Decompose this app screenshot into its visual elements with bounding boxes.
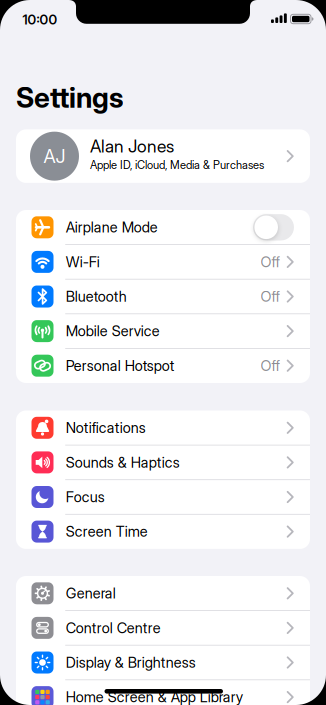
button[interactable]: AJ — [16, 129, 310, 183]
staticText: Bluetooth — [66, 288, 127, 305]
staticText: Airplane Mode — [66, 218, 158, 236]
staticText: Settings — [16, 80, 124, 114]
staticText: Control Centre — [66, 619, 161, 637]
button[interactable]: Wi-Fi — [16, 245, 310, 279]
staticText: Screen Time — [66, 523, 148, 540]
staticText: Home Screen & App Library — [66, 688, 243, 705]
button[interactable]: Personal Hotspot — [16, 348, 310, 383]
button[interactable]: Home Screen & App Library — [16, 680, 310, 705]
button[interactable]: Bluetooth — [16, 279, 310, 314]
staticText: AJ — [43, 145, 65, 167]
button[interactable]: Mobile Service — [16, 314, 310, 348]
staticText: Sounds & Haptics — [66, 454, 180, 471]
staticText: Display & Brightness — [66, 654, 196, 671]
button[interactable]: Focus — [16, 480, 310, 514]
staticText: Off — [261, 253, 280, 271]
staticText: Alan Jones — [90, 136, 174, 157]
staticText: Off — [261, 288, 280, 305]
button[interactable]: Airplane Mode — [16, 210, 310, 245]
staticText: Focus — [66, 488, 105, 506]
staticText: 10:00 — [22, 11, 57, 28]
staticText: Apple ID, iCloud, Media & Purchases — [90, 158, 264, 172]
button[interactable]: Control Centre — [16, 611, 310, 645]
staticText: Off — [261, 357, 280, 374]
button[interactable]: Sounds & Haptics — [16, 445, 310, 480]
button[interactable]: Notifications — [16, 410, 310, 445]
staticText: Wi-Fi — [66, 253, 100, 271]
staticText: Notifications — [66, 419, 146, 436]
staticText: Mobile Service — [66, 322, 160, 340]
button[interactable]: Display & Brightness — [16, 645, 310, 680]
staticText: General — [66, 584, 116, 602]
staticText: Personal Hotspot — [66, 357, 175, 374]
button[interactable]: Screen Time — [16, 514, 310, 549]
button[interactable]: General — [16, 576, 310, 611]
